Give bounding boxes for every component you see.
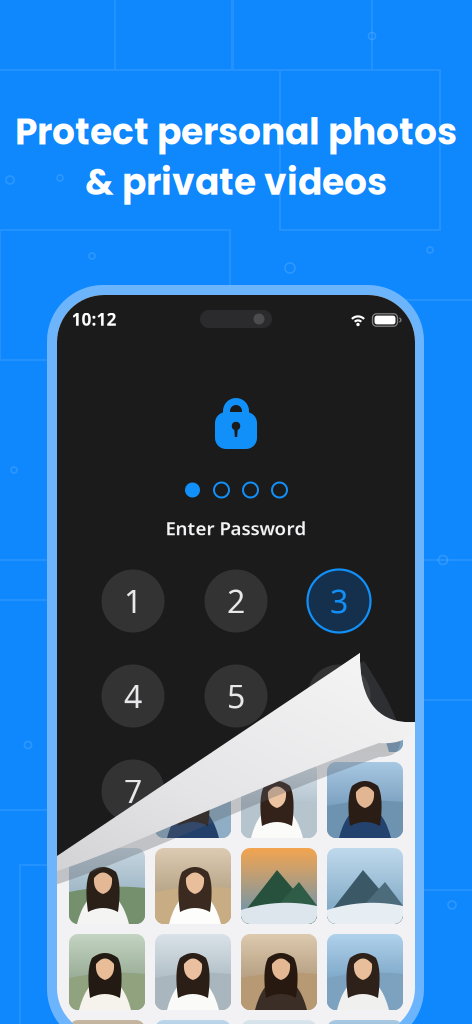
- staticText: 5: [227, 675, 245, 717]
- staticText: 10:12: [71, 307, 116, 330]
- button[interactable]: 2: [204, 569, 267, 632]
- button[interactable]: 1: [101, 569, 164, 632]
- staticText: 4: [124, 675, 142, 717]
- staticText: 3: [330, 580, 348, 622]
- staticText: 7: [124, 770, 142, 812]
- button[interactable]: 5: [204, 664, 267, 727]
- button[interactable]: 7: [101, 759, 164, 822]
- staticText: Enter Password: [165, 516, 306, 540]
- button[interactable]: 3: [307, 569, 370, 632]
- staticText: 9: [330, 770, 348, 812]
- button[interactable]: 4: [101, 664, 164, 727]
- staticText: 1: [124, 580, 142, 622]
- staticText: Protect personal photos: [15, 107, 457, 157]
- staticText: & private videos: [85, 157, 387, 207]
- staticText: 8: [227, 770, 245, 812]
- button[interactable]: 9: [307, 759, 370, 822]
- button[interactable]: 6: [307, 664, 370, 727]
- button[interactable]: 8: [204, 759, 267, 822]
- staticText: 2: [227, 580, 245, 622]
